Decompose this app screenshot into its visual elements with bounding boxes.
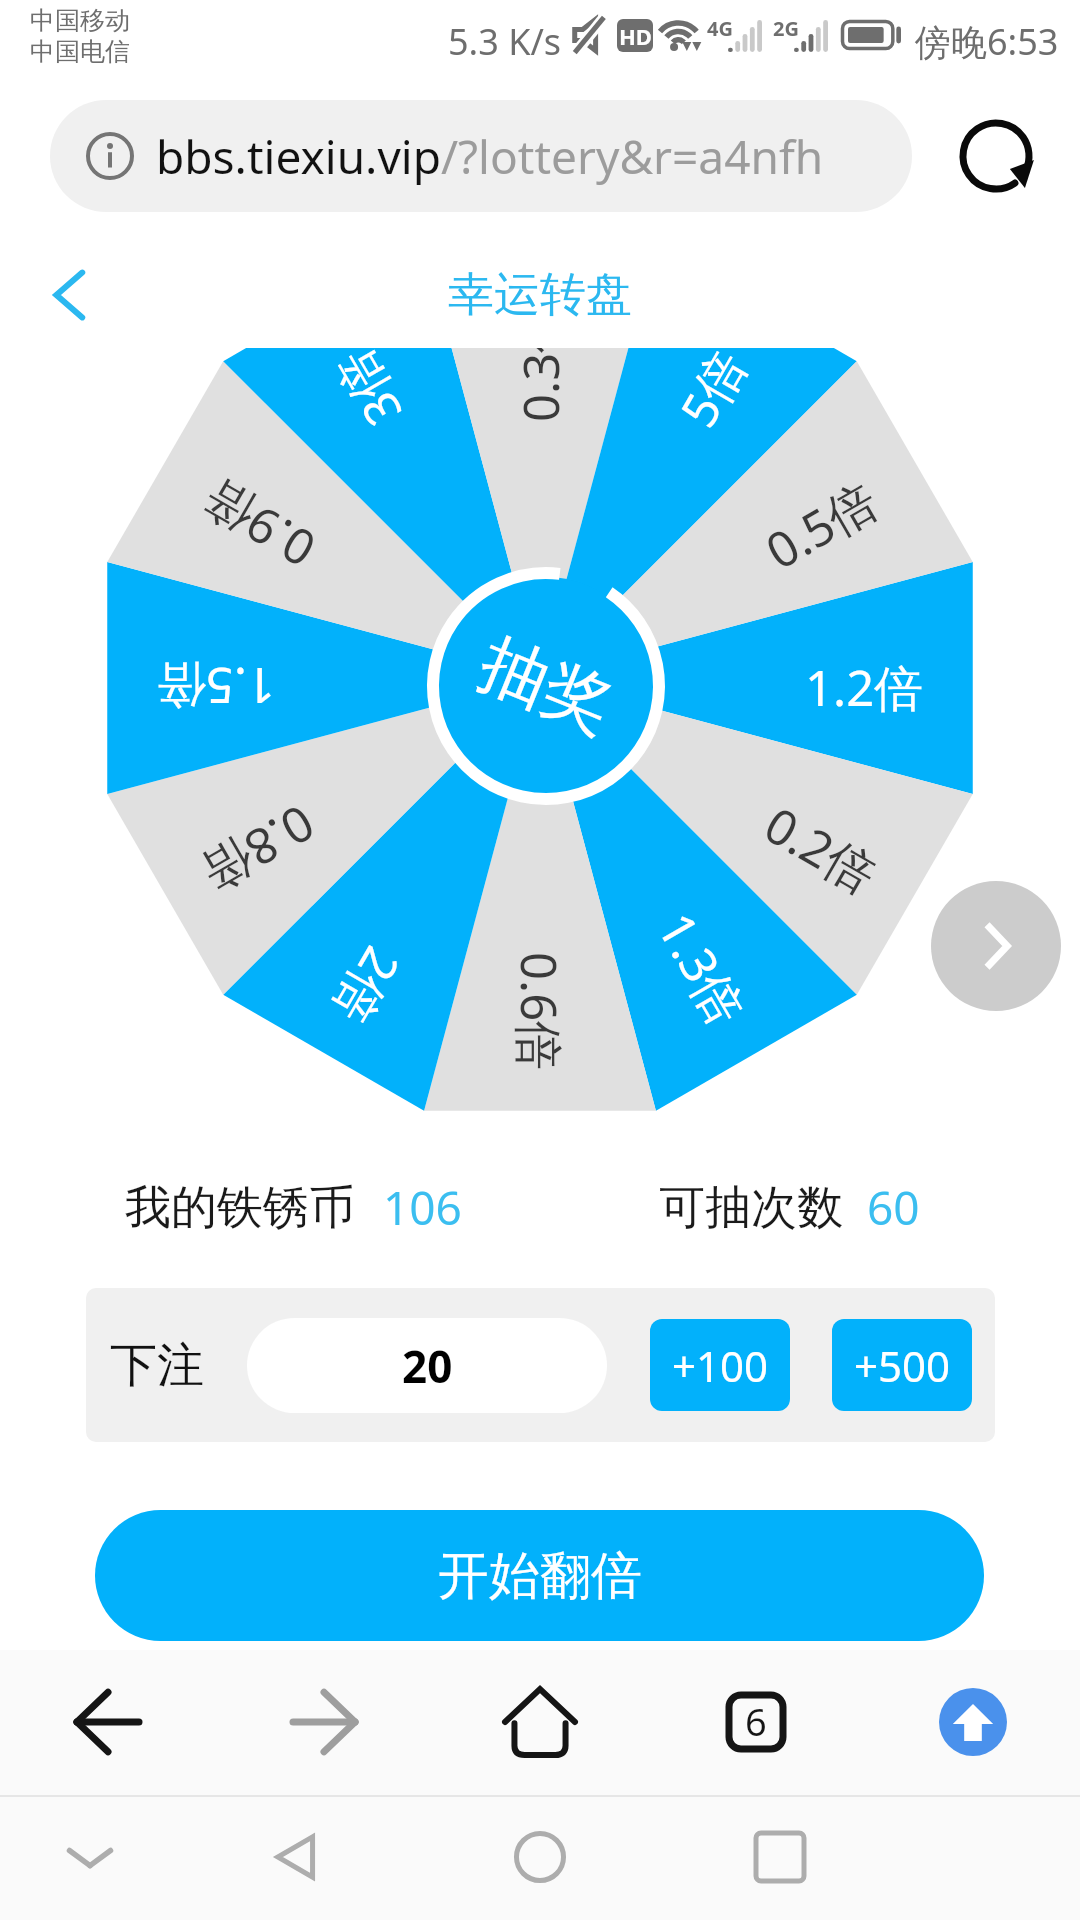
button[interactable]: +100: [650, 1319, 790, 1411]
button[interactable]: nav: [470, 1652, 610, 1792]
button[interactable]: 开始翻倍: [95, 1510, 984, 1641]
staticText: 0.6倍: [506, 952, 573, 1071]
staticText: bbs.tiexiu.vip: [156, 125, 441, 188]
button[interactable]: Next: [931, 881, 1061, 1011]
button[interactable]: Reload: [952, 112, 1040, 200]
button[interactable]: system nav: [30, 1797, 150, 1917]
staticText: 1.5倍: [156, 653, 275, 720]
staticText: +500: [854, 1337, 951, 1394]
staticText: 下注: [110, 1336, 204, 1395]
staticText: 5倍: [664, 348, 761, 438]
staticText: 中国移动: [30, 5, 130, 36]
staticText: HD: [619, 21, 652, 51]
staticText: 2G: [773, 15, 799, 42]
staticText: 抽奖: [467, 621, 625, 751]
button[interactable]: Back: [36, 261, 104, 329]
button[interactable]: system nav: [720, 1797, 840, 1917]
staticText: +100: [672, 1337, 769, 1394]
staticText: 60: [867, 1176, 920, 1239]
staticText: 1.3倍: [643, 900, 761, 1037]
staticText: 中国电信: [30, 36, 130, 67]
staticText: 0.9倍: [190, 466, 327, 583]
staticText: 0.8倍: [190, 790, 327, 908]
button[interactable]: bbs.tiexiu.vip: [50, 100, 912, 212]
staticText: /?lottery&r=a4nfh: [441, 125, 824, 188]
button[interactable]: 抽奖: [437, 577, 655, 795]
staticText: 0.3倍: [507, 348, 574, 422]
staticText: 可抽次数: [659, 1179, 843, 1237]
button[interactable]: nav: [38, 1652, 178, 1792]
staticText: 0.5倍: [753, 466, 890, 584]
staticText: 106: [383, 1176, 462, 1239]
staticText: 0.2倍: [753, 791, 889, 908]
staticText: 3倍: [319, 348, 416, 438]
staticText: 1.2倍: [805, 654, 924, 721]
staticText: 傍晚6:53: [915, 17, 1059, 66]
button[interactable]: nav: [686, 1652, 826, 1792]
staticText: 开始翻倍: [438, 1544, 642, 1608]
button[interactable]: 20: [247, 1318, 607, 1413]
staticText: 6: [745, 1695, 767, 1747]
button[interactable]: system nav: [238, 1797, 358, 1917]
staticText: 我的铁锈币: [125, 1179, 355, 1237]
button[interactable]: nav: [254, 1652, 394, 1792]
staticText: 幸运转盘: [448, 266, 632, 324]
button[interactable]: +500: [832, 1319, 972, 1411]
staticText: 4G: [707, 15, 733, 42]
button[interactable]: nav: [903, 1652, 1043, 1792]
staticText: 2倍: [319, 935, 416, 1036]
staticText: 5.3 K/s: [448, 17, 562, 66]
button[interactable]: system nav: [480, 1797, 600, 1917]
staticText: 20: [402, 1336, 453, 1396]
